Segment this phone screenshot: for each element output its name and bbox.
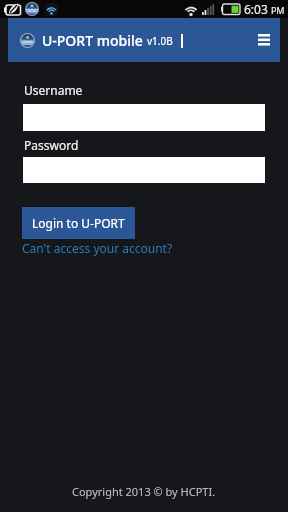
staticText: v1.0B xyxy=(147,34,173,48)
button[interactable]: Login to U-PORT xyxy=(22,207,135,239)
staticText: Login to U-PORT xyxy=(32,215,125,231)
staticText: U-PORT mobile xyxy=(42,31,143,50)
button[interactable] xyxy=(253,29,275,51)
staticText: Copyright 2013 © by HCPTI. xyxy=(72,484,216,499)
button[interactable]: Can't access your account? xyxy=(22,240,173,256)
staticText: Username xyxy=(24,82,83,98)
staticText: 6:03 PM xyxy=(244,1,285,17)
staticText: Password xyxy=(24,137,79,153)
